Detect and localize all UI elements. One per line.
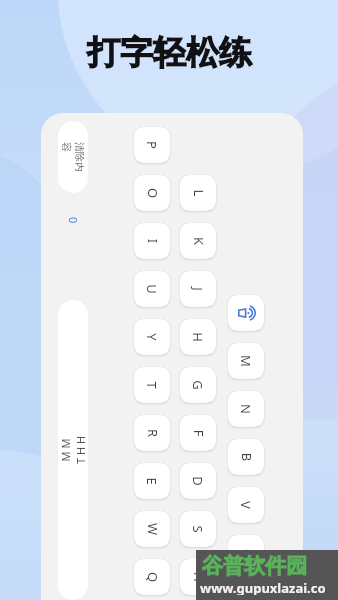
staticText: D [189, 476, 207, 486]
staticText: W [143, 522, 161, 535]
staticText: H [189, 332, 207, 342]
button[interactable]: S [180, 511, 216, 547]
button[interactable]: Q [134, 559, 170, 595]
button[interactable]: M [228, 343, 264, 379]
staticText: E [143, 477, 161, 485]
button[interactable]: L [180, 175, 216, 211]
staticText: C [237, 548, 255, 557]
staticText: 清除内容 [60, 142, 86, 172]
staticText: O [143, 187, 161, 198]
staticText: K [189, 236, 207, 245]
button[interactable]: Y [134, 319, 170, 355]
staticText: A [189, 572, 207, 581]
button[interactable]: H [180, 319, 216, 355]
button[interactable]: T [134, 367, 170, 403]
button[interactable]: Voice input [228, 295, 264, 331]
staticText: 0 [66, 217, 81, 224]
button[interactable]: C [228, 535, 264, 571]
button[interactable]: N [228, 391, 264, 427]
staticText: F [189, 429, 207, 436]
button[interactable]: B [228, 439, 264, 475]
staticText: I [143, 238, 161, 243]
staticText: G [189, 380, 207, 390]
button[interactable]: V [228, 487, 264, 523]
button[interactable]: A [180, 559, 216, 595]
button[interactable]: U [134, 271, 170, 307]
button[interactable]: M M T H H A K X G B O O M A Z M Y H H B … [58, 300, 88, 600]
button[interactable]: F [180, 415, 216, 451]
staticText: J [189, 287, 207, 291]
staticText: S [189, 525, 207, 533]
staticText: www.gupuxlazai.com [200, 579, 336, 595]
button[interactable]: I [134, 223, 170, 259]
staticText: R [143, 428, 161, 437]
staticText: 谷普软件园 [202, 553, 307, 577]
staticText: T [143, 381, 161, 389]
staticText: B [237, 452, 255, 461]
button[interactable]: K [180, 223, 216, 259]
button[interactable]: O [134, 175, 170, 211]
button[interactable]: E [134, 463, 170, 499]
button[interactable]: 清除内容 [58, 121, 88, 193]
staticText: Y [143, 333, 161, 341]
staticText: L [189, 189, 207, 196]
button[interactable]: G [180, 367, 216, 403]
button[interactable]: P [134, 127, 170, 163]
button[interactable]: D [180, 463, 216, 499]
button[interactable]: W [134, 511, 170, 547]
staticText: U [143, 284, 161, 294]
button[interactable]: J [180, 271, 216, 307]
staticText: N [237, 404, 255, 414]
button[interactable]: R [134, 415, 170, 451]
staticText: M [237, 355, 255, 367]
staticText: Q [143, 571, 161, 582]
staticText: M M T H H A K X G B O O M A Z M Y H H B … [58, 435, 88, 465]
staticText: V [237, 501, 255, 509]
button[interactable]: X [228, 583, 264, 600]
staticText: 打字轻松练 [87, 32, 252, 74]
staticText: P [143, 141, 161, 149]
